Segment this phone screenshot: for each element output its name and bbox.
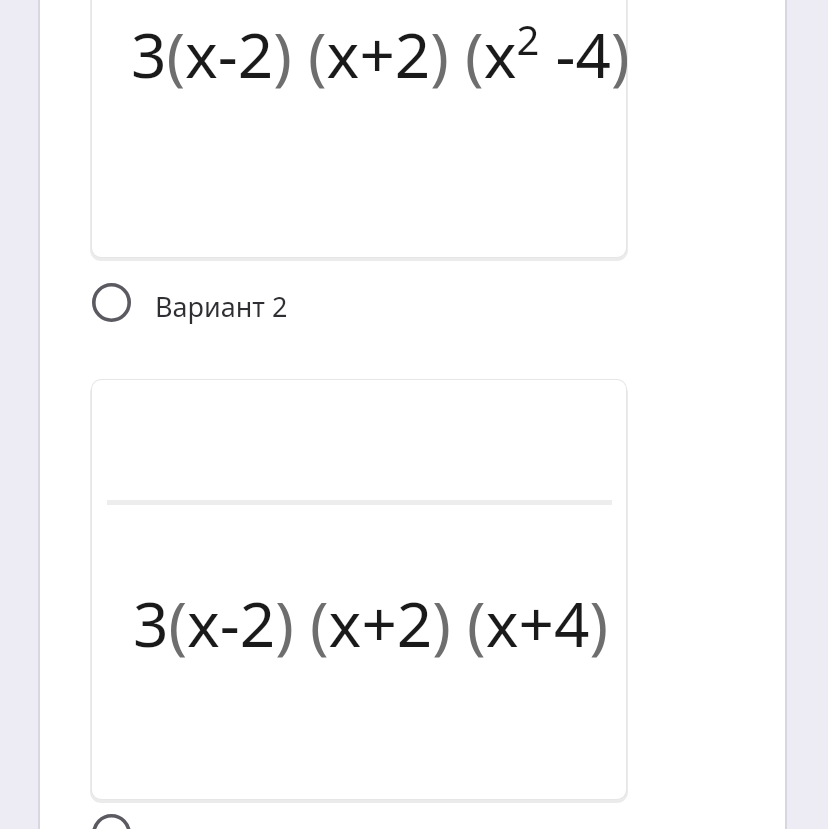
other: Вариант 2 radio button bbox=[92, 283, 131, 322]
button[interactable]: Вариант 2 radio button bbox=[85, 276, 405, 328]
other: Вариант 3 radio button bbox=[92, 814, 131, 829]
button[interactable] bbox=[92, 380, 626, 799]
staticText: 3(x-2) (x+2) (x2 -4) bbox=[131, 12, 627, 96]
button[interactable]: Вариант 3 radio button bbox=[85, 814, 405, 829]
staticText: 3(x-2) (x+2) (x+4) bbox=[133, 581, 608, 665]
button[interactable] bbox=[92, 0, 626, 257]
staticText: Вариант 2 bbox=[155, 288, 288, 325]
